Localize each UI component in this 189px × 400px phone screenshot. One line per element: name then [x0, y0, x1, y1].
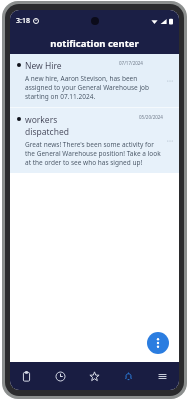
staticText: 07/17/2024 — [119, 60, 143, 66]
staticText: notification center — [50, 37, 139, 50]
button[interactable]: Favorites — [77, 362, 111, 390]
button[interactable]: Notifications — [111, 362, 145, 390]
staticText: workers dispatched — [25, 114, 82, 138]
staticText: 3:18 — [16, 16, 30, 26]
staticText: New Hire — [25, 60, 62, 72]
button[interactable]: History — [43, 362, 77, 390]
staticText: 05/20/2024 — [139, 114, 163, 120]
button[interactable]: More options — [147, 332, 169, 354]
button[interactable]: New Hire — [10, 54, 179, 107]
staticText: Great news! There's been some activity f… — [25, 140, 163, 167]
button[interactable]: More — [166, 77, 174, 85]
button[interactable]: More — [166, 137, 174, 145]
staticText: A new hire, Aaron Stevison, has been ass… — [25, 74, 163, 101]
button[interactable]: workers dispatched — [10, 108, 179, 173]
button[interactable]: Jobs — [10, 362, 43, 390]
button[interactable]: Menu — [145, 362, 179, 390]
